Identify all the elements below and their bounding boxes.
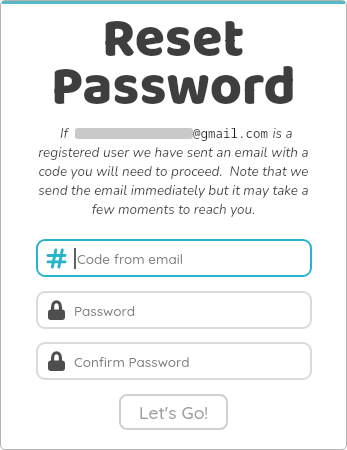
- staticText: If: [60, 124, 75, 142]
- staticText: registered user we have sent an email wi…: [38, 143, 309, 219]
- button[interactable]: Confirm Password: [36, 342, 312, 380]
- staticText: Confirm Password: [74, 353, 190, 370]
- button[interactable]: Password: [36, 291, 312, 329]
- button[interactable]: Code from email: [36, 239, 312, 277]
- staticText: @gmail.com: [193, 125, 269, 142]
- staticText: Reset: [102, 0, 245, 84]
- staticText: Code from email: [77, 250, 184, 267]
- staticText: Let's Go!: [139, 401, 209, 423]
- button[interactable]: Let's Go!: [119, 394, 228, 430]
- staticText: Password: [74, 302, 135, 319]
- staticText: Password: [51, 44, 296, 132]
- staticText: is a: [269, 124, 293, 142]
